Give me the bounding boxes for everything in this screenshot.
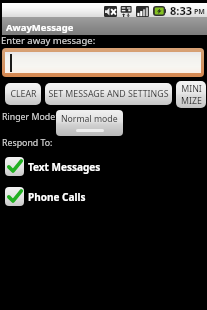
staticText: Phone Calls — [28, 190, 86, 204]
other: Silent mode — [104, 6, 117, 17]
staticText: Text Messages — [28, 160, 101, 174]
other: Signal strength — [136, 6, 149, 17]
button[interactable]: Phone Calls — [0, 187, 207, 206]
other: 3G network — [119, 6, 133, 17]
staticText: Respond To: — [2, 137, 53, 149]
button[interactable]: CLEAR — [5, 83, 41, 105]
staticText: Ringer Mode: — [2, 111, 58, 123]
button[interactable]: SET MESSAGE AND SETTINGS — [45, 83, 172, 105]
button[interactable]: Normal mode — [56, 110, 123, 136]
button[interactable]: MINI MIZE — [176, 81, 206, 108]
button[interactable] — [5, 52, 201, 73]
other: Battery charging — [153, 6, 166, 16]
staticText: MINI MIZE — [181, 83, 202, 107]
staticText: PM — [194, 7, 205, 17]
staticText: CLEAR — [10, 88, 37, 100]
staticText: AwayMessage — [6, 21, 74, 34]
staticText: 8:33 — [170, 3, 192, 17]
staticText: Enter away message: — [1, 34, 96, 47]
staticText: SET MESSAGE AND SETTINGS — [48, 88, 169, 100]
button[interactable]: Text Messages — [0, 157, 207, 176]
staticText: Normal mode — [61, 113, 118, 125]
